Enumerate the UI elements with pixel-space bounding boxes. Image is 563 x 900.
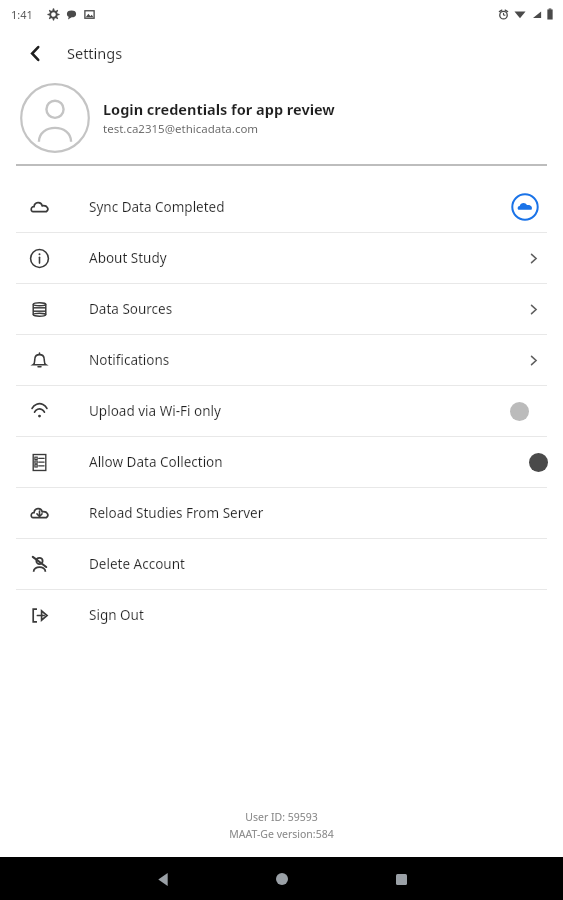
- button[interactable]: Sync Data Completed: [0, 182, 563, 232]
- staticText: Allow Data Collection: [89, 453, 489, 471]
- button[interactable]: Back: [146, 862, 180, 896]
- button[interactable]: Sign Out: [0, 590, 563, 640]
- button[interactable]: Allow Data Collection: [0, 437, 563, 487]
- staticText: Login credentials for app review: [103, 99, 335, 119]
- staticText: Sign Out: [89, 606, 489, 624]
- staticText: Sync Data Completed: [89, 198, 489, 216]
- staticText: User ID: 59593: [245, 810, 318, 824]
- button[interactable]: Toggle off: [503, 395, 535, 427]
- staticText: Upload via Wi-Fi only: [89, 402, 489, 420]
- button[interactable]: About Study: [0, 233, 563, 283]
- button[interactable]: Back: [20, 38, 50, 68]
- button[interactable]: Toggle on: [522, 446, 554, 478]
- button[interactable]: Data Sources: [0, 284, 563, 334]
- button[interactable]: Upload via Wi-Fi only: [0, 386, 563, 436]
- staticText: 1:41: [11, 7, 33, 22]
- staticText: Data Sources: [89, 300, 489, 318]
- staticText: About Study: [89, 249, 489, 267]
- button[interactable]: Reload Studies From Server: [0, 488, 563, 538]
- button[interactable]: Delete Account: [0, 539, 563, 589]
- button[interactable]: Notifications: [0, 335, 563, 385]
- staticText: Delete Account: [89, 555, 489, 573]
- staticText: Notifications: [89, 351, 489, 369]
- staticText: Settings: [67, 43, 123, 63]
- button[interactable]: Sync data: [511, 193, 539, 221]
- staticText: MAAT-Ge version:584: [229, 827, 334, 841]
- staticText: Reload Studies From Server: [89, 504, 489, 522]
- button[interactable]: Recent apps: [384, 862, 418, 896]
- button[interactable]: Home: [265, 862, 299, 896]
- staticText: test.ca2315@ethicadata.com: [103, 121, 259, 137]
